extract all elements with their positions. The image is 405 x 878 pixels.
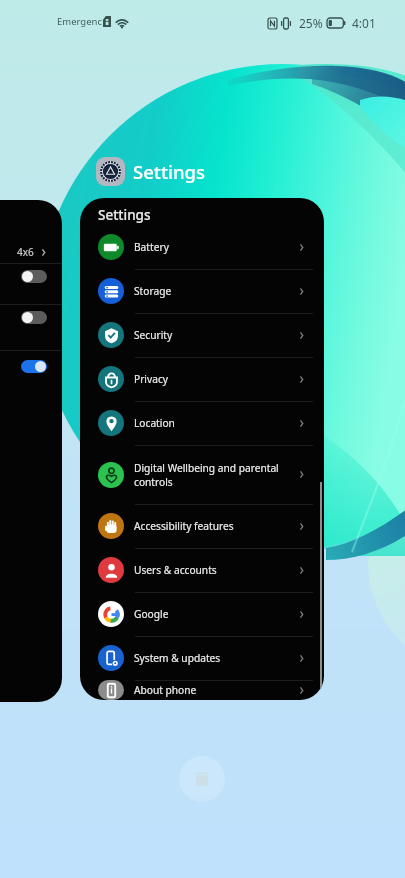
button[interactable]: Battery — [80, 225, 324, 269]
staticText: System & updates — [134, 651, 221, 665]
staticText: Emergenc — [57, 15, 102, 28]
staticText: Accessibility features — [134, 519, 234, 533]
staticText: Battery — [134, 240, 169, 254]
staticText: Privacy — [134, 372, 168, 386]
button[interactable]: 4x6 — [0, 240, 47, 264]
staticText: Google — [134, 607, 169, 621]
button[interactable]: Users & accounts — [80, 548, 324, 592]
button[interactable]: About phone — [80, 680, 324, 700]
staticText: Location — [134, 416, 175, 430]
button[interactable]: System & updates — [80, 636, 324, 680]
staticText: Security — [134, 328, 173, 342]
button[interactable]: Storage — [80, 269, 324, 313]
button[interactable]: Google — [80, 592, 324, 636]
staticText: 25% — [299, 15, 323, 31]
staticText: Settings — [98, 206, 151, 224]
button[interactable]: Remove — [179, 756, 225, 802]
button[interactable] — [0, 354, 47, 378]
staticText: Storage — [134, 284, 172, 298]
staticText: Users & accounts — [134, 563, 217, 577]
button[interactable]: Privacy — [80, 357, 324, 401]
button[interactable] — [0, 305, 47, 329]
staticText: About phone — [134, 683, 197, 697]
staticText: Settings — [133, 159, 206, 184]
button[interactable]: Security — [80, 313, 324, 357]
button[interactable]: Accessibility features — [80, 504, 324, 548]
staticText: 4:01 — [352, 15, 376, 31]
staticText: 4x6 — [17, 245, 34, 259]
button[interactable]: Location — [80, 401, 324, 445]
button[interactable] — [0, 264, 47, 288]
button[interactable]: Digital Wellbeing and parental controls — [80, 445, 324, 504]
staticText: Digital Wellbeing and parental controls — [134, 461, 279, 489]
